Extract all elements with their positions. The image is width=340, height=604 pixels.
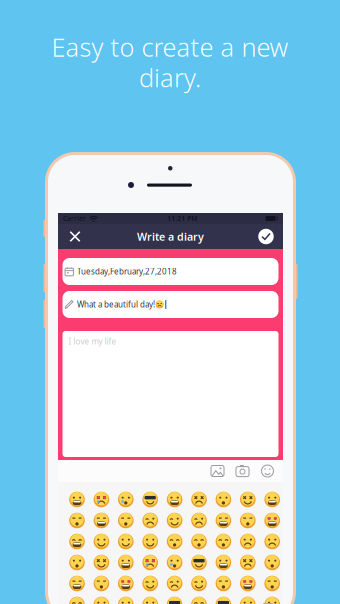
button[interactable]: Emoji	[236, 552, 260, 573]
button[interactable]: Save	[252, 224, 280, 249]
button[interactable]: Emoji	[162, 510, 187, 531]
button[interactable]: Emoji	[187, 573, 211, 594]
button[interactable]: Emoji	[162, 531, 187, 552]
button[interactable]: Emoji	[211, 594, 236, 604]
button[interactable]: Emoji	[211, 573, 236, 594]
button[interactable]: I love my life	[62, 331, 278, 457]
button[interactable]: Emoji	[187, 594, 211, 604]
button[interactable]: Emoji	[187, 510, 211, 531]
button[interactable]: Emoji	[138, 510, 162, 531]
button[interactable]: Emoji	[187, 489, 211, 510]
staticText: 11:21 PM	[167, 214, 197, 223]
button[interactable]: Emoji	[89, 531, 114, 552]
button[interactable]: Emoji	[236, 531, 260, 552]
button[interactable]: Emoji	[236, 510, 260, 531]
button[interactable]: Emoji	[211, 531, 236, 552]
button[interactable]: Emoji	[114, 510, 138, 531]
button[interactable]: Emoji	[211, 489, 236, 510]
button[interactable]: Emoji	[187, 531, 211, 552]
button[interactable]: Emoji	[114, 594, 138, 604]
staticText: What a beautiful day!	[77, 299, 155, 310]
button[interactable]: Emoji	[89, 573, 114, 594]
staticText: Tuesday,February,27,2018	[77, 266, 177, 277]
button[interactable]: Emoji	[187, 552, 211, 573]
button[interactable]: Emoji	[65, 531, 89, 552]
button[interactable]: Emoji	[255, 460, 280, 482]
button[interactable]: Emoji	[65, 573, 89, 594]
button[interactable]: Emoji	[162, 552, 187, 573]
button[interactable]: Emoji	[138, 573, 162, 594]
staticText: Write a diary	[137, 229, 204, 244]
button[interactable]: Emoji	[236, 489, 260, 510]
button[interactable]: Emoji	[138, 552, 162, 573]
staticText: I love my life	[68, 336, 116, 347]
button[interactable]: Camera	[230, 460, 255, 482]
button[interactable]: Emoji	[89, 594, 114, 604]
button[interactable]: Emoji	[89, 489, 114, 510]
button[interactable]: Emoji	[65, 510, 89, 531]
button[interactable]: Delete	[255, 602, 277, 604]
staticText: Carrier	[63, 214, 86, 223]
button[interactable]: Emoji	[260, 594, 284, 604]
button[interactable]: Emoji	[260, 531, 284, 552]
button[interactable]: Tuesday,February,27,2018	[62, 258, 278, 285]
button[interactable]: Emoji	[236, 573, 260, 594]
button[interactable]: Emoji	[114, 552, 138, 573]
staticText: diary.	[139, 61, 201, 94]
button[interactable]: Emoji	[65, 552, 89, 573]
button[interactable]: Emoji	[114, 531, 138, 552]
button[interactable]: Emoji	[89, 552, 114, 573]
button[interactable]: Emoji	[138, 594, 162, 604]
button[interactable]: Emoji	[138, 489, 162, 510]
button[interactable]: Emoji	[211, 510, 236, 531]
button[interactable]: Emoji	[114, 573, 138, 594]
button[interactable]: Emoji	[138, 531, 162, 552]
button[interactable]: Emoji	[260, 552, 284, 573]
button[interactable]: Emoji	[260, 489, 284, 510]
button[interactable]: Close	[61, 224, 89, 249]
button[interactable]: Emoji	[162, 573, 187, 594]
button[interactable]: Emoji	[89, 510, 114, 531]
button[interactable]: Emoji	[162, 489, 187, 510]
button[interactable]: Emoji	[260, 573, 284, 594]
button[interactable]: Emoji	[211, 552, 236, 573]
button[interactable]: Photos	[205, 460, 230, 482]
button[interactable]: Emoji	[260, 510, 284, 531]
button[interactable]: What a beautiful day!	[62, 291, 278, 318]
button[interactable]: Emoji	[114, 489, 138, 510]
staticText: Easy to create a new	[51, 30, 288, 64]
button[interactable]: Emoji	[65, 489, 89, 510]
button[interactable]: Emoji	[65, 594, 89, 604]
button[interactable]: Emoji	[162, 594, 187, 604]
button[interactable]: Emoji	[236, 594, 260, 604]
